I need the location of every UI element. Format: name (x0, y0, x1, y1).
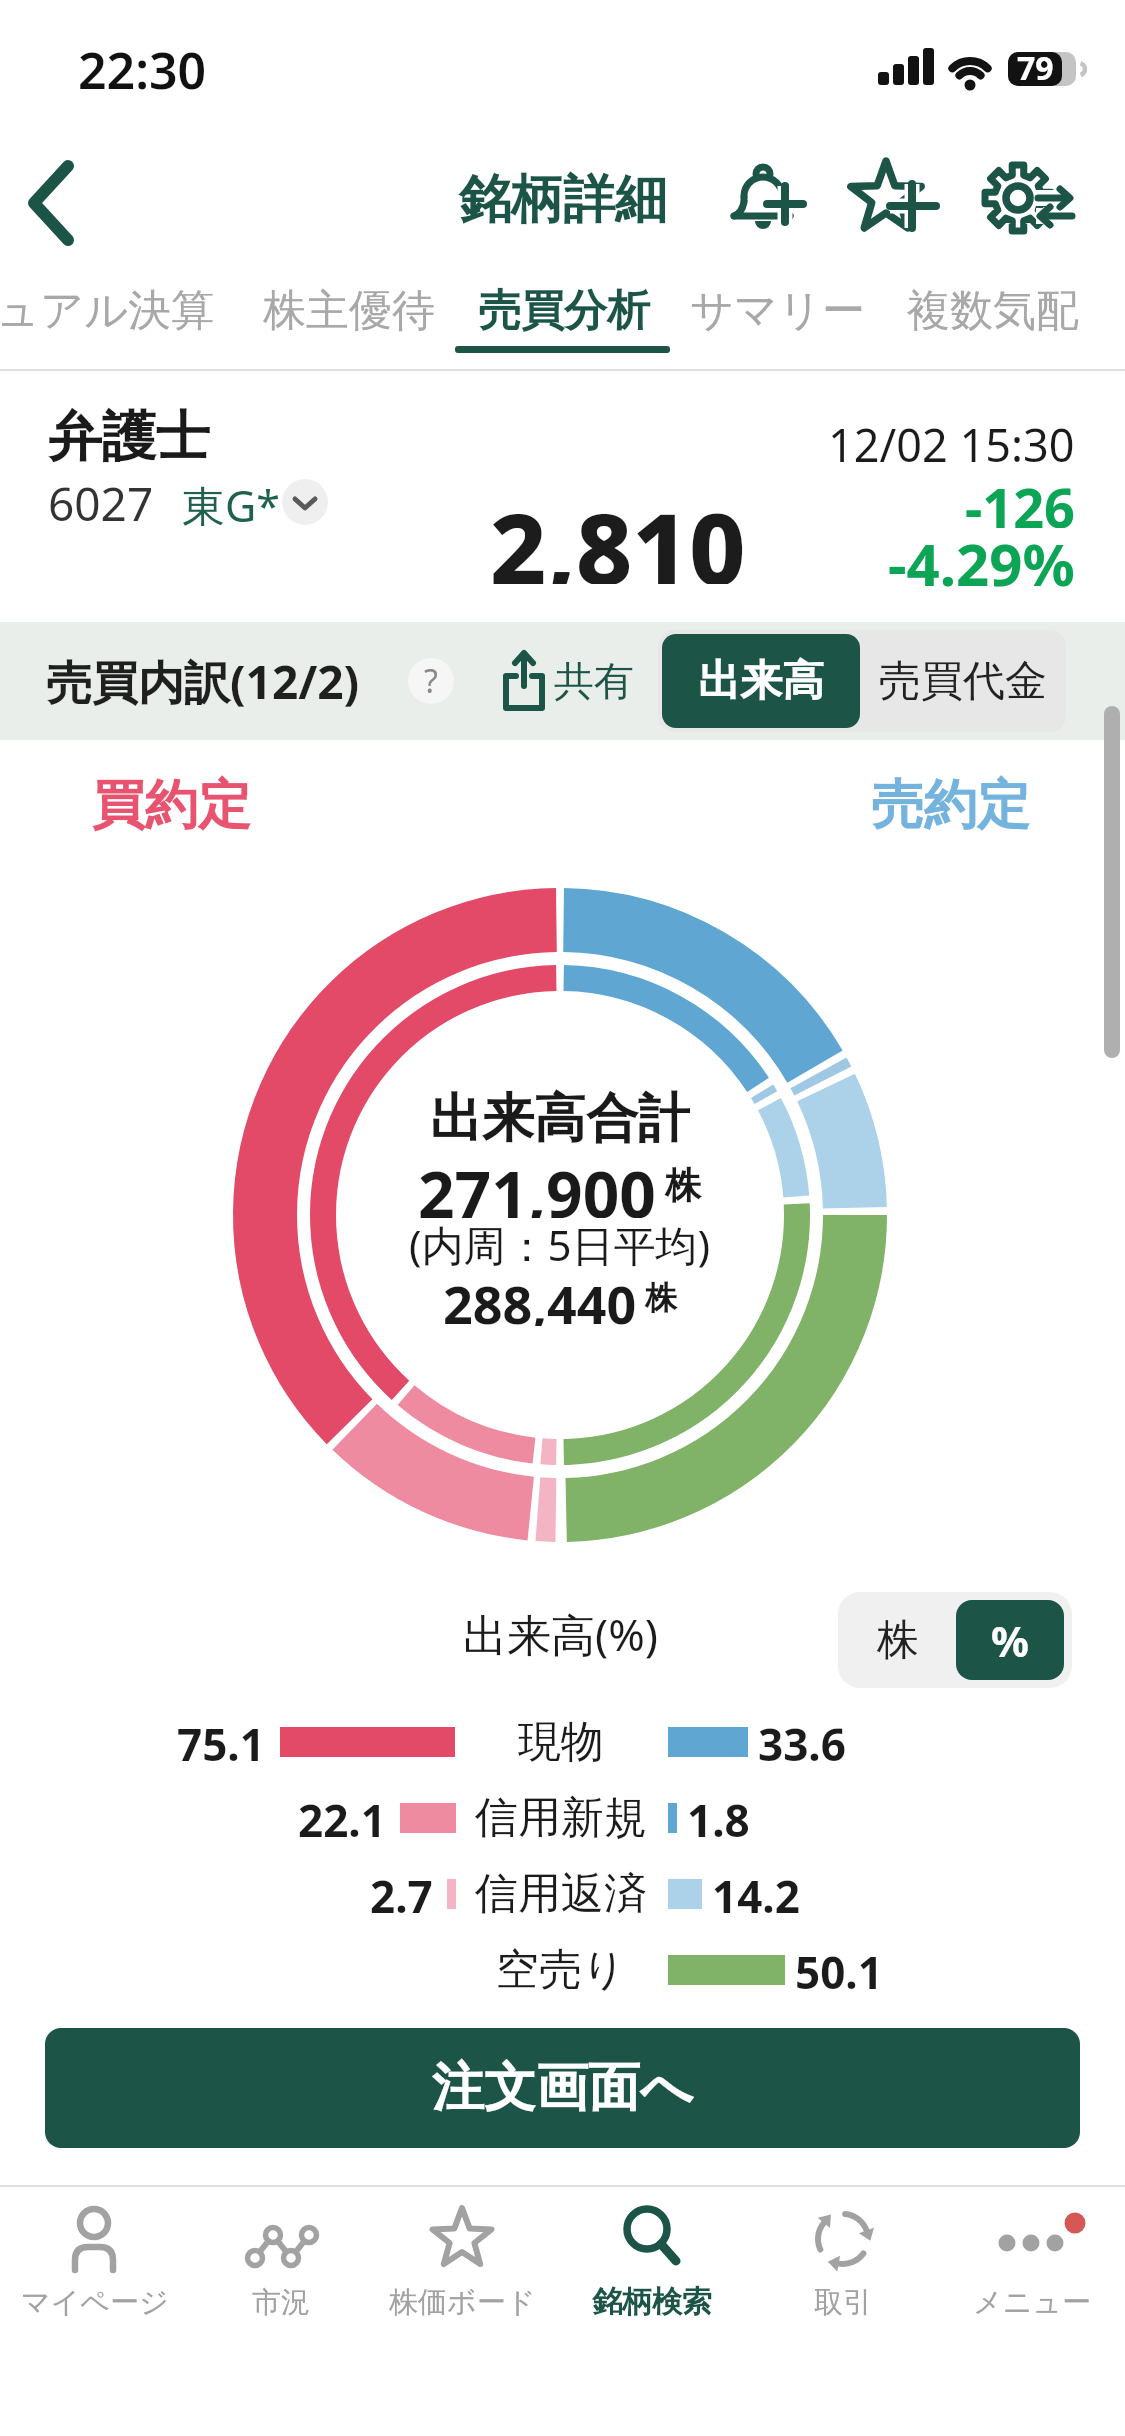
button[interactable]: 市況 (216, 2195, 346, 2330)
button[interactable] (976, 156, 1084, 248)
staticText: 75.1 (177, 1714, 265, 1770)
staticText: 現物 (518, 1715, 604, 1769)
button[interactable]: 注文画面へ (45, 2028, 1080, 2148)
button[interactable] (846, 156, 946, 248)
button[interactable] (726, 156, 818, 248)
button[interactable]: 複数気配 (893, 283, 1093, 339)
staticText: % (991, 1612, 1029, 1669)
staticText: 12/02 15:30 (828, 414, 1075, 468)
staticText: ? (424, 659, 438, 703)
staticText: 東G* (182, 476, 280, 526)
staticText: 信用返済 (475, 1867, 647, 1921)
staticText: 22.1 (298, 1790, 386, 1846)
staticText: 市況 (252, 2284, 310, 2321)
staticText: 株 (877, 1614, 919, 1667)
staticText: 出来高合計 (430, 1086, 690, 1150)
staticText: (内周：5日平均) (409, 1216, 711, 1270)
staticText: 取引 (814, 2284, 872, 2321)
staticText: 33.6 (758, 1714, 846, 1770)
staticText: メニュー (973, 2284, 1092, 2321)
button[interactable]: 共有 (496, 646, 646, 716)
staticText: 株価ボード (389, 2284, 536, 2321)
staticText: 売買代金 (879, 655, 1047, 708)
button[interactable] (282, 479, 328, 525)
staticText: 共有 (554, 656, 634, 706)
staticText: 銘柄詳細 (459, 167, 667, 233)
staticText: 株 (656, 1160, 702, 1209)
staticText: 出来高 (698, 655, 824, 708)
staticText: 売約定 (871, 772, 1030, 834)
staticText: マイページ (21, 2284, 169, 2321)
button[interactable]: ? (408, 658, 454, 704)
staticText: 売買分析 (478, 284, 650, 338)
staticText: 22:30 (78, 36, 207, 96)
button[interactable]: 売買分析 (464, 283, 664, 339)
staticText: 271,900 (418, 1150, 656, 1218)
button[interactable]: サマリー (678, 283, 878, 339)
button[interactable]: 取引 (778, 2195, 908, 2330)
staticText: 6027 (48, 472, 154, 528)
staticText: 株主優待 (263, 284, 435, 338)
button[interactable]: 売買代金 (860, 630, 1066, 732)
staticText: 売買内訳(12/2) (46, 650, 360, 713)
staticText: 株 (637, 1275, 678, 1319)
staticText: 2.7 (370, 1866, 433, 1922)
button[interactable]: 銘柄検索 (562, 2195, 742, 2330)
button[interactable]: マイページ (5, 2195, 185, 2330)
button[interactable]: 株 (838, 1592, 958, 1688)
button[interactable]: 株主優待 (249, 283, 449, 339)
staticText: 14.2 (712, 1866, 800, 1922)
staticText: 弁護士 (48, 403, 210, 471)
staticText: 50.1 (795, 1942, 883, 1998)
staticText: 1.8 (687, 1790, 750, 1846)
staticText: サマリー (690, 284, 866, 338)
staticText: 79 (1017, 46, 1054, 90)
staticText: 信用新規 (475, 1791, 647, 1845)
button[interactable]: % (956, 1600, 1064, 1680)
staticText: -4.29% (888, 524, 1075, 588)
staticText: 買約定 (92, 772, 251, 834)
staticText: 空売り (496, 1943, 627, 1997)
staticText: -126 (965, 470, 1075, 528)
staticText: 288,440 (443, 1268, 637, 1326)
staticText: 2,810 (490, 480, 746, 584)
staticText: 銘柄検索 (592, 2283, 712, 2321)
staticText: 注文画面へ (432, 2055, 694, 2121)
staticText: 出来高(%) (463, 1604, 658, 1664)
button[interactable]: 出来高 (662, 634, 860, 728)
button[interactable] (24, 160, 84, 246)
button[interactable]: メニュー (942, 2195, 1122, 2330)
staticText: ビジュアル決算 (0, 284, 215, 338)
button[interactable]: 株価ボード (372, 2195, 552, 2330)
staticText: 複数気配 (907, 284, 1079, 338)
